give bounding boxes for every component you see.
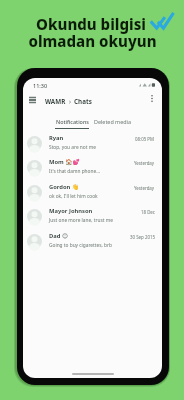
staticText: Deleted media	[94, 118, 131, 125]
button[interactable]: Notifications	[54, 113, 90, 131]
staticText: Mom 🏠💕	[49, 158, 80, 166]
staticText: Just one more lane, trust me	[49, 217, 113, 224]
staticText: Yesterday	[134, 185, 155, 191]
staticText: Dad 😊	[49, 232, 68, 240]
staticText: 11:30	[33, 82, 48, 89]
button[interactable]: Deleted media	[91, 118, 133, 130]
button[interactable]: Ryan	[23, 132, 162, 156]
button[interactable]: Mayor Johnson	[23, 205, 162, 229]
staticText: It's that damn phone...	[49, 168, 100, 175]
staticText: 30 Sep 2015	[130, 234, 155, 240]
staticText: Going to buy cigarettes, brb	[49, 242, 112, 249]
button[interactable]: Mom 🏠💕	[23, 156, 162, 180]
staticText: Yesterday	[134, 160, 155, 166]
staticText: olmadan okuyun	[28, 31, 157, 51]
staticText: Mayor Johnson	[49, 207, 93, 215]
staticText: Ryan	[49, 134, 64, 142]
staticText: Notifications	[56, 118, 89, 125]
staticText: ›	[69, 97, 71, 106]
button[interactable]: Gordon 👋	[23, 181, 162, 205]
staticText: 18 Dec	[141, 209, 155, 215]
staticText: Okundu bilgisi	[36, 14, 146, 34]
staticText: Chats	[74, 97, 92, 106]
staticText: Gordon 👋	[49, 183, 80, 191]
button[interactable]: Dad 😊	[23, 230, 162, 254]
staticText: WAMR	[45, 97, 66, 106]
staticText: 08:05 PM	[135, 136, 155, 142]
staticText: Stop, you are not me	[49, 144, 96, 151]
button[interactable]: More options	[146, 92, 158, 104]
staticText: ok ok, I'll let him cook	[49, 193, 98, 200]
button[interactable]: Open navigation menu	[25, 92, 39, 106]
